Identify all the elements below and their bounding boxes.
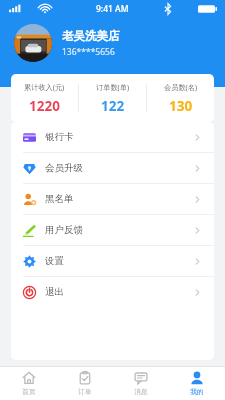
staticText: 订单数(单) <box>96 82 130 92</box>
staticText: 累计收入(元) <box>24 82 65 92</box>
button[interactable]: 设置 <box>11 246 214 277</box>
button[interactable]: 会员升级 <box>11 153 214 184</box>
button[interactable]: 我的 <box>169 367 225 400</box>
staticText: 银行卡 <box>45 131 74 143</box>
staticText: 130 <box>169 97 193 115</box>
staticText: 退出 <box>45 286 64 298</box>
button[interactable]: Shop photo <box>14 24 120 62</box>
staticText: 设置 <box>45 255 64 267</box>
staticText: 会员数(名) <box>164 82 198 92</box>
staticText: 122 <box>101 97 125 115</box>
staticText: 9:41 AM <box>96 3 129 15</box>
button[interactable]: 首页 <box>0 367 57 400</box>
other: Shop photo <box>14 24 52 62</box>
staticText: 136****5656 <box>62 46 115 58</box>
staticText: 老吴洗美店 <box>62 29 120 43</box>
staticText: 用户反馈 <box>45 224 83 236</box>
staticText: 会员升级 <box>45 162 83 174</box>
button[interactable]: 退出 <box>11 277 214 307</box>
button[interactable]: 会员数(名) <box>147 74 214 122</box>
staticText: 消息 <box>134 387 148 396</box>
button[interactable]: 黑名单 <box>11 184 214 215</box>
button[interactable]: 银行卡 <box>11 122 214 153</box>
button[interactable]: 消息 <box>113 367 169 400</box>
staticText: 我的 <box>190 387 204 396</box>
staticText: 1220 <box>29 97 60 115</box>
button[interactable]: 订单 <box>57 367 113 400</box>
staticText: 首页 <box>22 387 36 396</box>
staticText: 订单 <box>78 387 92 396</box>
button[interactable]: 订单数(单) <box>79 74 146 122</box>
staticText: 黑名单 <box>45 193 74 205</box>
button[interactable]: 用户反馈 <box>11 215 214 246</box>
button[interactable]: 累计收入(元) <box>11 74 78 122</box>
